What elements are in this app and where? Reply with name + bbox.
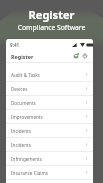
staticText: Insurance Claims xyxy=(11,170,48,176)
button[interactable]: Improvements xyxy=(6,110,93,123)
staticText: Audit & Tasks xyxy=(11,72,40,78)
button[interactable]: Audit & Tasks xyxy=(6,68,93,81)
staticText: Documents xyxy=(11,100,36,106)
button[interactable]: Documents xyxy=(6,96,93,109)
button[interactable]: Incidents xyxy=(6,138,93,151)
staticText: Register xyxy=(11,53,34,60)
button[interactable]: Notifications xyxy=(73,53,79,59)
staticText: Incidents xyxy=(11,142,31,148)
staticText: 9:41 xyxy=(10,42,20,48)
staticText: Infringements xyxy=(11,156,42,162)
button[interactable]: Infringements xyxy=(6,152,93,165)
button[interactable]: Insurance Claims xyxy=(6,166,93,179)
staticText: Incidents xyxy=(11,128,31,134)
staticText: Register xyxy=(0,7,103,22)
button[interactable]: Devices xyxy=(6,82,93,95)
button[interactable]: Log out xyxy=(82,53,88,59)
staticText: Improvements xyxy=(11,114,43,120)
staticText: Devices xyxy=(11,86,28,92)
staticText: Compliance Software xyxy=(0,23,103,32)
button[interactable]: Incidents xyxy=(6,124,93,137)
